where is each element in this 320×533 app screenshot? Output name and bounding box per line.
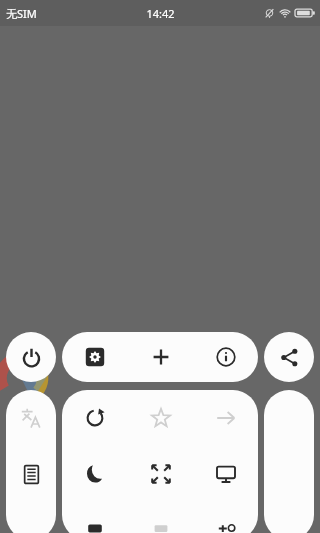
button[interactable]: Night mode <box>62 445 128 503</box>
button[interactable]: Share <box>264 332 314 382</box>
button[interactable]: Reading mode <box>6 445 56 503</box>
button[interactable]: Translate <box>6 390 56 445</box>
button[interactable]: Settings <box>62 332 128 382</box>
button[interactable]: Print <box>128 503 193 533</box>
button[interactable]: Reload <box>62 390 128 445</box>
button[interactable]: Downloads <box>62 503 128 533</box>
button[interactable]: Power <box>6 332 56 382</box>
button[interactable]: More options <box>264 390 314 533</box>
button[interactable]: New tab <box>128 332 193 382</box>
button[interactable]: Page info <box>193 332 258 382</box>
button[interactable]: Forward <box>193 390 258 445</box>
button[interactable]: Desktop site <box>193 445 258 503</box>
button[interactable]: Bookmark <box>128 390 193 445</box>
button[interactable]: Add shortcut <box>193 503 258 533</box>
staticText: 14:42 <box>146 6 175 21</box>
staticText: 无SIM <box>6 6 37 21</box>
button[interactable]: Full screen <box>128 445 193 503</box>
